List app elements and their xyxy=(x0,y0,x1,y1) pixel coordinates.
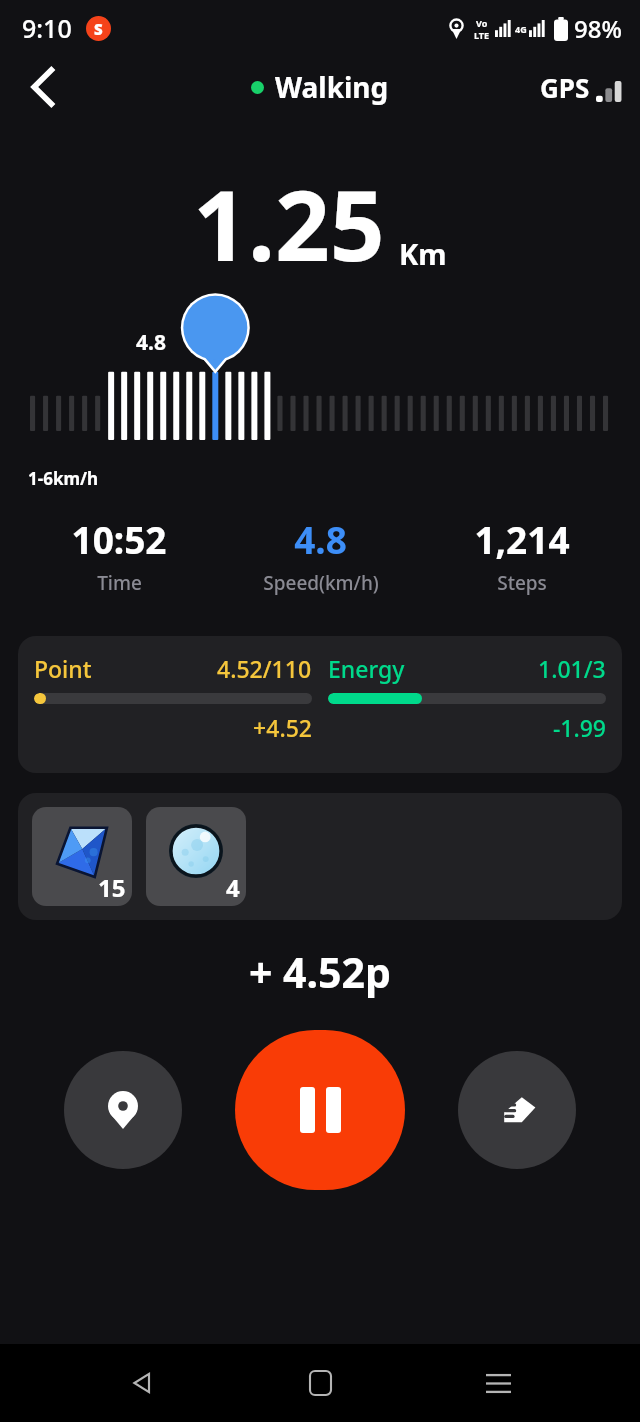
button[interactable]: Point xyxy=(18,636,622,773)
staticText: Vo xyxy=(476,17,488,29)
staticText: Energy xyxy=(328,653,405,684)
button[interactable]: Home xyxy=(285,1348,355,1418)
button[interactable]: 1,214 xyxy=(421,514,622,596)
staticText: 98% xyxy=(574,12,622,45)
staticText: +4.52 xyxy=(34,712,312,743)
button[interactable]: Pause xyxy=(235,1030,405,1190)
staticText: Steps xyxy=(497,570,547,596)
staticText: 15 xyxy=(98,871,126,904)
button[interactable]: Back xyxy=(14,58,72,116)
staticText: 9:10 xyxy=(22,11,72,45)
staticText: Km xyxy=(399,234,447,273)
staticText: 1.25 xyxy=(193,158,385,289)
staticText: 4.8 xyxy=(136,328,166,357)
staticText: 10:52 xyxy=(71,514,167,564)
button[interactable]: 4 xyxy=(146,807,246,906)
button[interactable]: 15 xyxy=(32,807,132,906)
staticText: 1.01/3 xyxy=(538,653,606,684)
staticText: 1,214 xyxy=(474,514,570,564)
staticText: Time xyxy=(97,570,142,596)
staticText: LTE xyxy=(474,29,490,41)
button[interactable]: Recent apps xyxy=(463,1348,533,1418)
button[interactable]: GPS xyxy=(540,70,622,105)
button[interactable]: 10:52 xyxy=(18,514,220,596)
staticText: 1-6km/h xyxy=(28,467,99,490)
staticText: -1.99 xyxy=(328,712,606,743)
staticText: Point xyxy=(34,653,92,684)
staticText: 4.8 xyxy=(294,514,347,564)
staticText: S xyxy=(94,19,103,39)
staticText: + 4.52p xyxy=(249,944,391,1000)
button[interactable]: 4.8 xyxy=(220,514,421,596)
staticText: 4G xyxy=(515,23,527,35)
button[interactable]: Map xyxy=(64,1051,182,1169)
staticText: GPS xyxy=(540,70,590,105)
button[interactable]: Activity type xyxy=(458,1051,576,1169)
staticText: 4.52/110 xyxy=(217,653,312,684)
button[interactable]: Back xyxy=(108,1348,178,1418)
staticText: Walking xyxy=(275,68,389,106)
staticText: 4 xyxy=(226,871,240,904)
staticText: Speed(km/h) xyxy=(263,570,379,596)
